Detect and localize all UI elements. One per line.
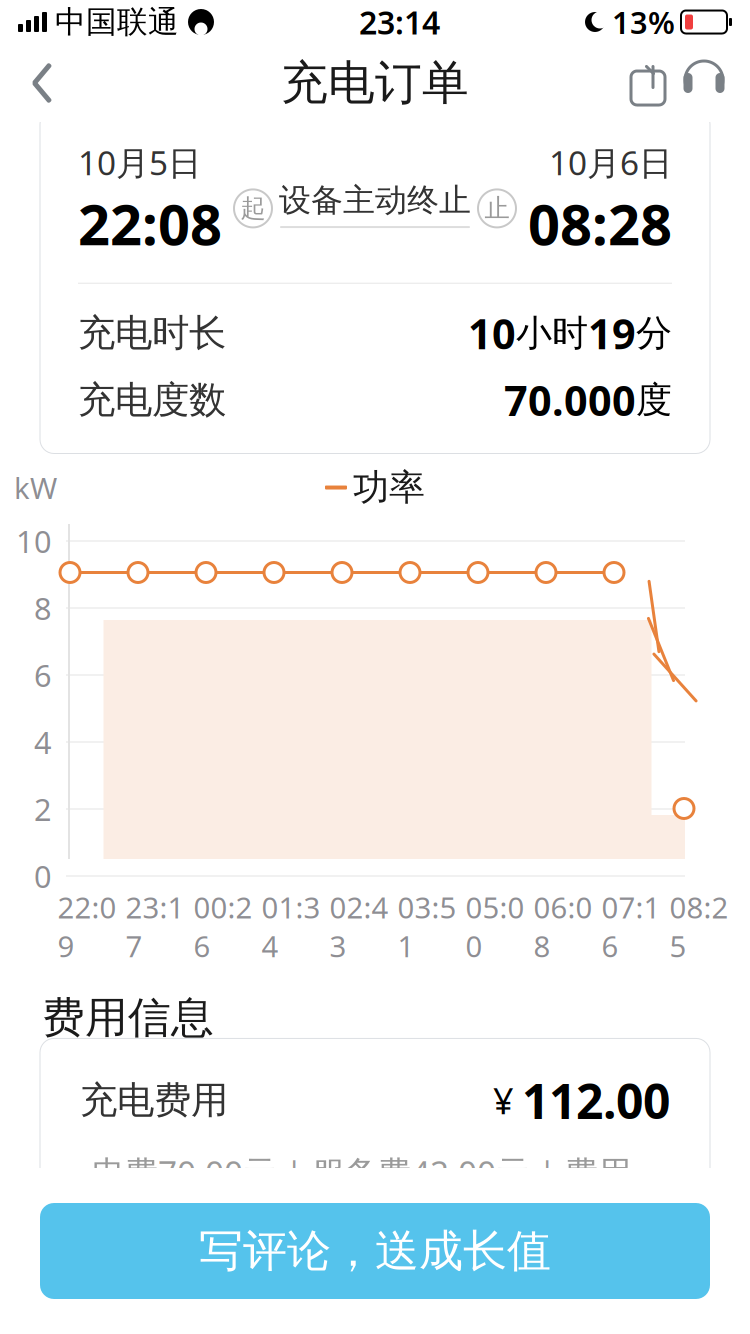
staticText: 112.00	[522, 1068, 670, 1132]
staticText: 07:16	[601, 887, 660, 965]
staticText: 10月6日	[549, 140, 672, 184]
staticText: 03:51	[397, 887, 456, 965]
staticText: 4	[34, 722, 52, 762]
staticText: 10月5日	[78, 140, 201, 184]
staticText: kW	[14, 468, 57, 507]
staticText: 功率	[353, 465, 425, 510]
staticText: ⌄	[631, 1174, 670, 1212]
staticText: 6	[34, 655, 52, 695]
staticText: 00:26	[193, 887, 252, 965]
staticText: 充电度数	[78, 377, 226, 423]
staticText: 度	[636, 378, 672, 422]
staticText: 02:43	[329, 887, 388, 965]
staticText: 22:09	[57, 887, 116, 965]
button[interactable]: 分享	[620, 55, 676, 111]
staticText: 起	[240, 193, 265, 224]
staticText: 充电费用	[80, 1077, 228, 1123]
staticText: 13%	[612, 2, 675, 42]
staticText: 70.000	[504, 373, 636, 427]
staticText: 费用信息	[42, 991, 214, 1044]
staticText: 0	[34, 856, 52, 896]
staticText: 2	[34, 789, 52, 829]
staticText: 06:08	[533, 887, 592, 965]
staticText: 23:14	[359, 1, 440, 43]
button[interactable]: 返回	[14, 55, 70, 111]
button[interactable]: 写评论，送成长值	[0, 1203, 750, 1299]
staticText: 05:00	[465, 887, 524, 965]
staticText: 小时	[516, 311, 588, 355]
staticText: 19	[588, 306, 636, 361]
staticText: 电费70.00元 | 服务费42.00元 | 费用详情	[92, 1150, 631, 1235]
staticText: 设备主动终止	[279, 181, 471, 220]
staticText: 22:08	[78, 186, 222, 261]
staticText: 10	[16, 521, 52, 561]
staticText: 08:28	[528, 186, 672, 261]
staticText: 中国联通	[55, 3, 179, 41]
staticText: 止	[484, 193, 509, 224]
staticText: 充电时长	[78, 310, 226, 356]
staticText: 充电订单	[281, 54, 469, 112]
staticText: 01:34	[261, 887, 320, 965]
staticText: 8	[34, 588, 52, 628]
staticText: 08:25	[669, 887, 728, 965]
staticText: 10	[468, 306, 516, 361]
staticText: 23:17	[125, 887, 184, 965]
staticText: ¥	[493, 1076, 514, 1124]
staticText: 写评论，送成长值	[199, 1224, 551, 1278]
button[interactable]: 客服	[676, 55, 736, 111]
staticText: 分	[636, 311, 672, 355]
button[interactable]: 电费70.00元 | 服务费42.00元 | 费用详情	[40, 1132, 710, 1255]
